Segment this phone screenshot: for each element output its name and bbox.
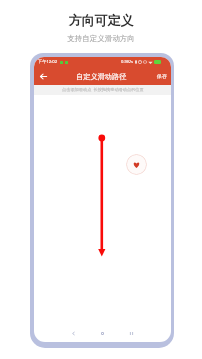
button[interactable]: Back xyxy=(66,326,80,340)
button[interactable]: Back xyxy=(36,69,50,83)
staticText: 下午12:02 xyxy=(38,59,58,65)
button[interactable]: Recents xyxy=(124,326,138,340)
staticText: 自定义滑动路径 xyxy=(76,72,127,81)
staticText: 0.9K/s xyxy=(121,59,134,65)
staticText: 支持自定义滑动方向 xyxy=(0,34,202,43)
staticText: 保存 xyxy=(157,73,167,79)
button[interactable]: Home xyxy=(95,326,109,340)
button[interactable]: 保存 xyxy=(153,73,167,79)
button[interactable]: Favorite xyxy=(126,154,147,175)
staticText: 方向可定义 xyxy=(0,12,202,28)
staticText: 点击添加滑动点 长按拖拽移动滑动点的位置 xyxy=(62,87,144,93)
